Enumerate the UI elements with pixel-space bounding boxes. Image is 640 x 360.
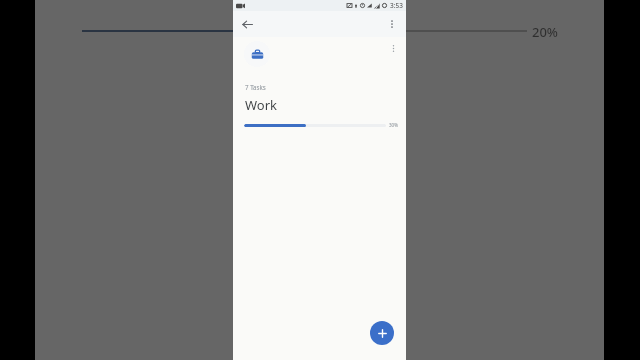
staticText: Work (245, 96, 278, 114)
button[interactable]: Work list icon (244, 41, 270, 67)
staticText: 7 Tasks (245, 83, 266, 91)
button[interactable]: Add task (370, 321, 394, 345)
staticText: 20% (532, 23, 558, 41)
button[interactable]: More options (382, 14, 402, 34)
staticText: 30% (389, 122, 398, 128)
button[interactable]: List options (384, 39, 402, 57)
button[interactable]: Back (237, 14, 257, 34)
staticText: 3:53 (390, 1, 403, 10)
